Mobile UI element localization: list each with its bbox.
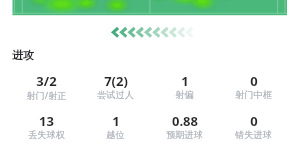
button[interactable]: 0	[219, 72, 288, 90]
staticText: 0.88	[172, 112, 198, 130]
staticText: 丢失球权	[28, 129, 65, 141]
staticText: 7(2)	[104, 72, 128, 90]
staticText: 13	[39, 112, 54, 130]
button[interactable]: 1	[150, 72, 219, 90]
button[interactable]: 3/2	[12, 72, 81, 90]
staticText: 越位	[106, 129, 125, 141]
staticText: 3/2	[36, 72, 57, 90]
button[interactable]: 1	[81, 112, 150, 130]
staticText: 1	[181, 72, 189, 90]
staticText: 进攻	[12, 48, 34, 62]
staticText: 射门/射正	[26, 89, 67, 102]
staticText: 尝试过人	[97, 89, 134, 101]
button[interactable]: 13	[12, 112, 81, 130]
button[interactable]: 0	[219, 112, 288, 130]
staticText: 射偏	[175, 89, 194, 101]
staticText: 1	[112, 112, 120, 130]
staticText: 预期进球	[166, 129, 203, 141]
staticText: 0	[250, 72, 258, 90]
staticText: 0	[250, 112, 258, 130]
staticText: 射门中框	[235, 89, 272, 101]
button[interactable]: 0.88	[150, 112, 219, 130]
button[interactable]: 7(2)	[81, 72, 150, 90]
staticText: 错失进球	[235, 129, 272, 141]
